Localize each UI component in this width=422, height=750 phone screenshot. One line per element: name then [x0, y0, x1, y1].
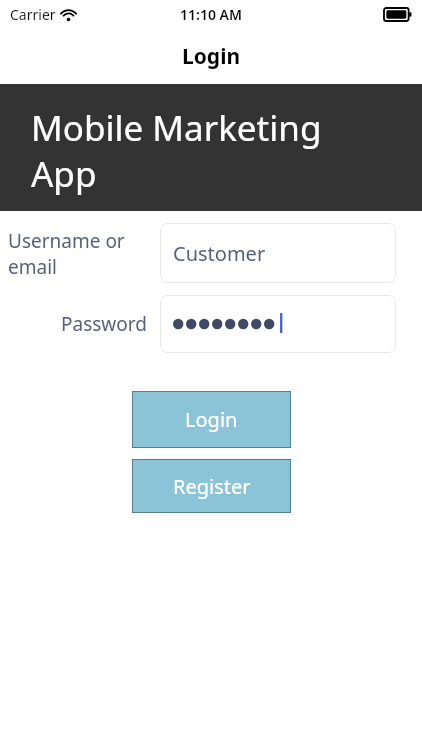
- button[interactable]: Login: [132, 391, 291, 448]
- staticText: Mobile Marketing App: [31, 104, 342, 197]
- staticText: Login: [185, 406, 238, 433]
- staticText: Carrier: [10, 5, 56, 24]
- staticText: Register: [173, 473, 251, 500]
- staticText: Customer: [173, 240, 266, 267]
- button[interactable]: [160, 295, 396, 353]
- staticText: Login: [182, 42, 241, 71]
- staticText: 11:10 AM: [180, 5, 242, 24]
- staticText: Password: [61, 311, 147, 337]
- staticText: Username or email: [8, 228, 152, 279]
- button[interactable]: Register: [132, 459, 291, 513]
- button[interactable]: Customer: [160, 223, 396, 283]
